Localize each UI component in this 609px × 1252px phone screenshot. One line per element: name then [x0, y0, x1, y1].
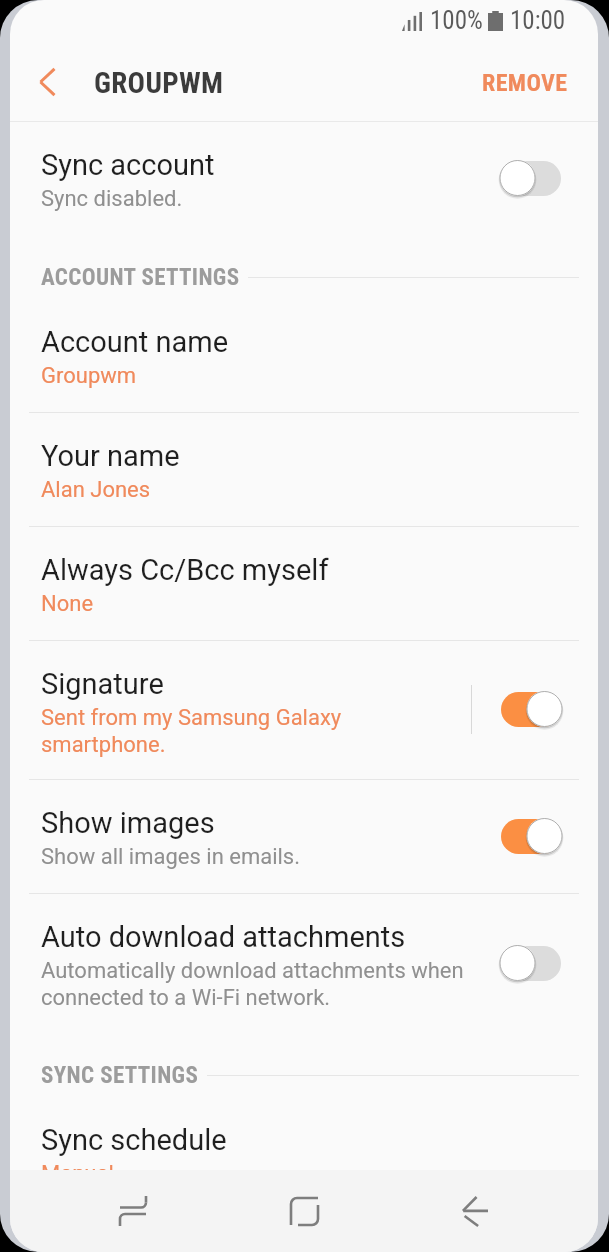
staticText: SYNC SETTINGS [41, 1062, 199, 1089]
staticText: Sync account [41, 148, 215, 182]
button[interactable]: Recent apps [97, 1170, 169, 1252]
staticText: Your name [41, 439, 180, 473]
staticText: ACCOUNT SETTINGS [41, 264, 240, 291]
staticText: REMOVE [482, 69, 568, 97]
button[interactable]: REMOVE [466, 56, 598, 113]
button[interactable]: Toggle Show images [499, 817, 563, 855]
staticText: Account name [41, 325, 229, 359]
button[interactable]: Always Cc/Bcc myself [10, 527, 598, 640]
button[interactable]: Back [439, 1170, 511, 1252]
staticText: Signature [41, 667, 164, 701]
staticText: 100% [430, 6, 483, 35]
button[interactable]: Sync schedule [10, 1097, 598, 1170]
staticText: None [41, 591, 94, 617]
button[interactable]: Home [268, 1170, 340, 1252]
button[interactable]: Show images [10, 780, 598, 893]
staticText: Groupwm [41, 363, 137, 389]
staticText: GROUPWM [94, 66, 224, 100]
button[interactable]: Toggle Sync account [499, 159, 563, 197]
staticText: Automatically download attachments when … [41, 958, 464, 1010]
staticText: Always Cc/Bcc myself [41, 553, 329, 587]
staticText: Alan Jones [41, 477, 151, 503]
button[interactable]: Toggle Signature [499, 690, 563, 728]
button[interactable]: Your name [10, 413, 598, 526]
button[interactable]: Auto download attachments [10, 894, 598, 1062]
staticText: 10:00 [510, 6, 566, 35]
button[interactable]: Toggle Auto download attachments [499, 944, 563, 982]
staticText: Sent from my Samsung Galaxy smartphone. [41, 705, 342, 757]
staticText: Show images [41, 806, 215, 840]
staticText: Show all images in emails. [41, 844, 301, 870]
staticText: Sync disabled. [41, 186, 183, 212]
staticText: Sync schedule [41, 1123, 227, 1157]
button[interactable]: Account name [10, 299, 598, 412]
staticText: Auto download attachments [41, 920, 406, 954]
staticText: Manual [41, 1161, 114, 1170]
button[interactable]: Sync account [10, 122, 598, 264]
button[interactable]: Signature [10, 641, 598, 779]
button[interactable]: Navigate up [19, 54, 75, 110]
